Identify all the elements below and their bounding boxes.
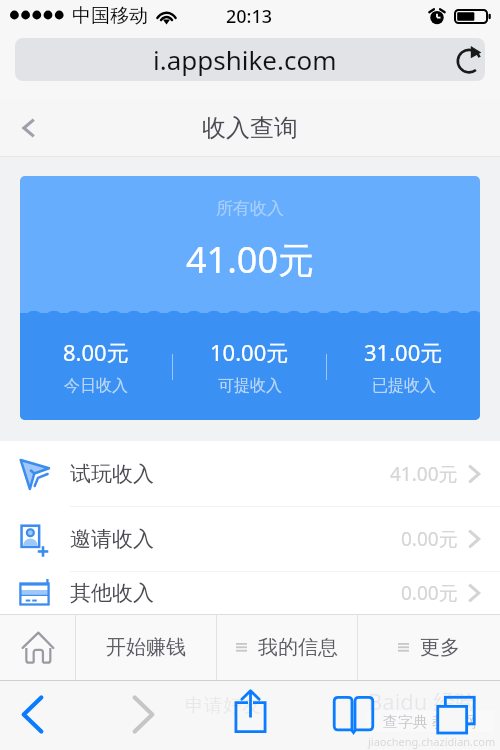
- staticText: 所有收入: [20, 198, 480, 219]
- button[interactable]: 我的信息: [217, 614, 357, 680]
- button[interactable]: i.appshike.com: [15, 38, 485, 81]
- staticText: 收入查询: [202, 113, 298, 143]
- staticText: 我的信息: [258, 635, 338, 660]
- button[interactable]: 试玩收入: [0, 441, 500, 506]
- button[interactable]: 其他收入: [0, 571, 500, 614]
- button[interactable]: Home: [0, 614, 75, 680]
- staticText: 10.00元: [210, 337, 289, 367]
- staticText: 今日收入: [64, 376, 128, 396]
- staticText: i.appshike.com: [153, 42, 337, 77]
- staticText: 0.00元: [401, 526, 458, 552]
- staticText: 中国移动: [72, 4, 148, 28]
- staticText: 41.00元: [20, 235, 480, 284]
- staticText: 已提收入: [372, 376, 436, 396]
- staticText: jiaocheng.chazidian.com: [368, 734, 496, 749]
- staticText: 可提收入: [218, 376, 282, 396]
- button[interactable]: Tabs: [434, 692, 478, 736]
- button[interactable]: 邀请收入: [0, 506, 500, 571]
- button[interactable]: Back: [11, 692, 54, 736]
- staticText: 41.00元: [390, 461, 458, 487]
- staticText: Baidu 经验: [368, 686, 478, 716]
- staticText: 其他收入: [70, 580, 154, 606]
- staticText: 8.00元: [63, 337, 129, 367]
- button[interactable]: Reload: [455, 46, 483, 74]
- staticText: 开始赚钱: [106, 635, 186, 660]
- button[interactable]: Share: [229, 687, 271, 735]
- staticText: 邀请收入: [70, 526, 154, 552]
- button[interactable]: Forward: [122, 692, 165, 736]
- staticText: 申请好友: [185, 694, 261, 718]
- button[interactable]: 更多: [358, 614, 500, 680]
- staticText: 更多: [420, 635, 460, 660]
- staticText: 查字典 教程网: [383, 711, 477, 731]
- staticText: 20:13: [226, 4, 273, 29]
- staticText: 0.00元: [401, 580, 458, 606]
- button[interactable]: 开始赚钱: [76, 614, 216, 680]
- staticText: 31.00元: [364, 337, 443, 367]
- button[interactable]: Back: [14, 113, 44, 143]
- staticText: 试玩收入: [70, 461, 154, 487]
- button[interactable]: Bookmarks: [331, 692, 375, 736]
